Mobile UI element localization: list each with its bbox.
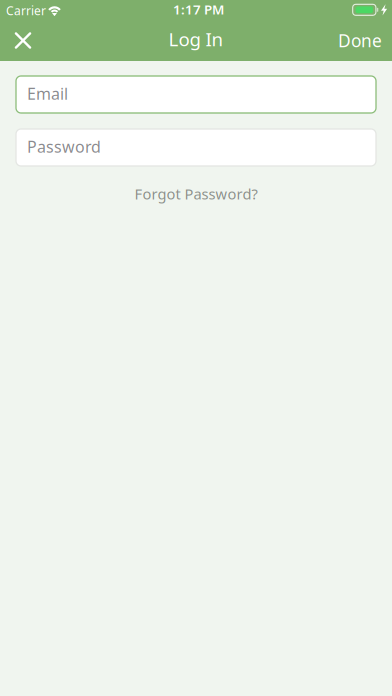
staticText: Email (27, 83, 68, 104)
staticText: 1:17 PM (173, 0, 224, 18)
staticText: Forgot Password? (134, 184, 257, 203)
button[interactable]: Done (326, 20, 392, 61)
button[interactable]: Password (16, 129, 376, 166)
staticText: Carrier (6, 2, 46, 18)
staticText: Password (27, 136, 101, 157)
staticText: Log In (168, 27, 223, 51)
button[interactable]: Email (16, 76, 376, 113)
button[interactable]: Forgot Password? (124, 180, 267, 207)
button[interactable]: Close (0, 20, 46, 61)
staticText: Done (338, 29, 382, 52)
